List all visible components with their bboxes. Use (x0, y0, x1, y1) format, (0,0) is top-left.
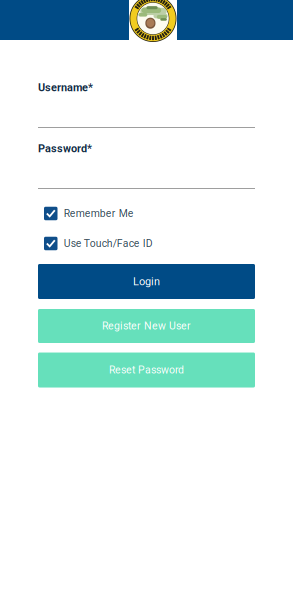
button[interactable]: Reset Password (38, 352, 255, 387)
staticText: Register New User (102, 320, 191, 332)
staticText: Use Touch/Face ID (64, 237, 153, 250)
button[interactable]: Remember Me (44, 206, 261, 220)
staticText: Password* (38, 142, 92, 155)
staticText: Remember Me (64, 207, 134, 220)
button[interactable]: Use Touch/Face ID (44, 236, 261, 250)
staticText: Username* (38, 81, 93, 94)
button[interactable]: Register New User (38, 309, 255, 343)
staticText: Login (133, 275, 160, 288)
button[interactable]: Login (38, 264, 255, 299)
staticText: Reset Password (109, 364, 184, 376)
